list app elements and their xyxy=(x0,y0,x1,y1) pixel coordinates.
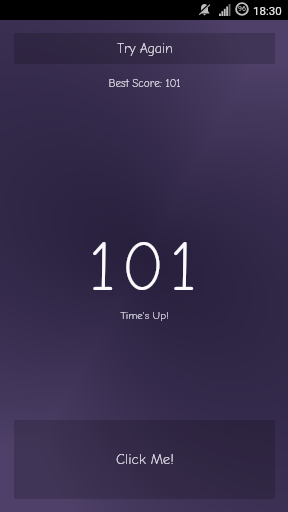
other: Silent mode xyxy=(199,3,210,16)
staticText: 96 xyxy=(238,5,246,13)
other: Battery 96 percent xyxy=(235,2,249,16)
other: Signal strength xyxy=(219,4,231,16)
staticText: 18:30 xyxy=(253,4,282,17)
staticText: Best Score: 101 xyxy=(108,77,181,90)
button[interactable]: Try Again xyxy=(14,33,275,64)
staticText: Try Again xyxy=(117,41,173,57)
staticText: Click Me! xyxy=(116,451,174,468)
staticText: 101 xyxy=(89,227,203,307)
button[interactable]: Click Me! xyxy=(14,420,275,499)
staticText: Time's Up! xyxy=(120,309,169,321)
